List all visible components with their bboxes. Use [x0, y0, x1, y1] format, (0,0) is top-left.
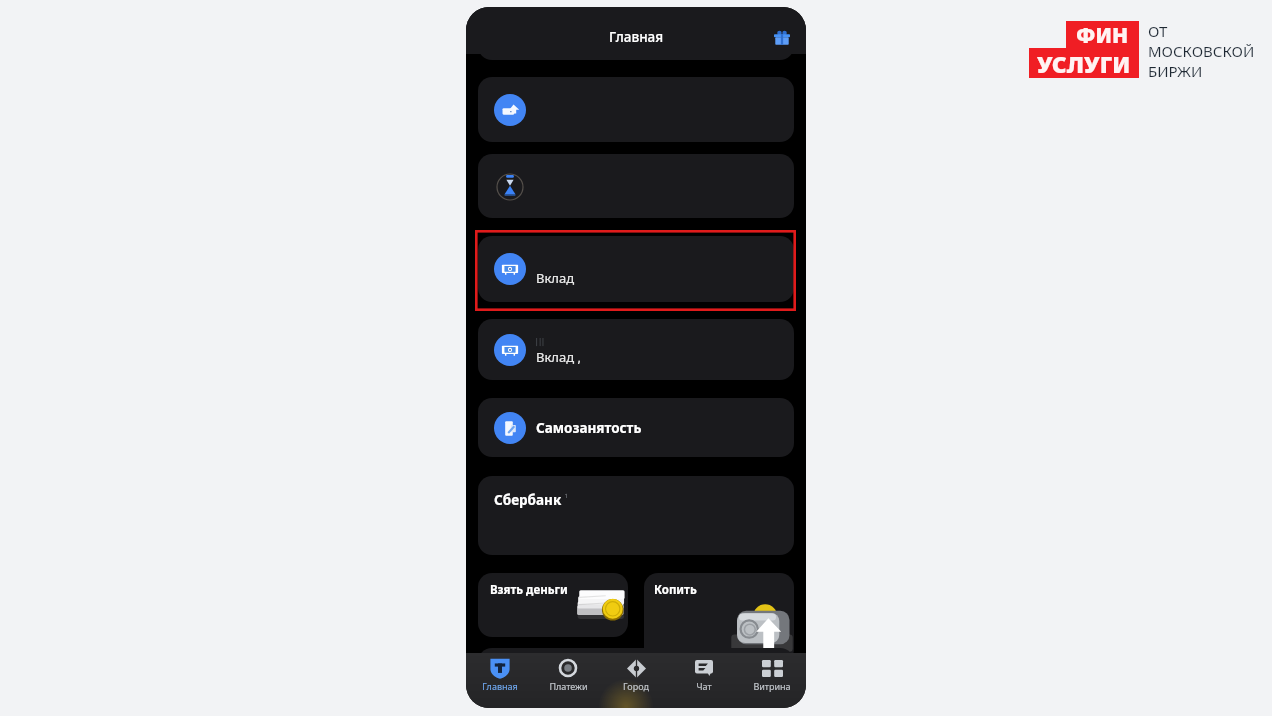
- staticText: Вклад: [536, 269, 578, 287]
- staticText: ФИН: [1076, 21, 1129, 48]
- button[interactable]: Вклад ,: [478, 319, 794, 380]
- button[interactable]: Взять деньги: [478, 573, 628, 637]
- staticText: БИРЖИ: [1148, 61, 1203, 81]
- button[interactable]: Чат: [670, 653, 738, 708]
- staticText: Взять деньги: [490, 582, 568, 598]
- staticText: Витрина: [753, 680, 791, 692]
- staticText: Вклад ,: [536, 348, 581, 366]
- staticText: Главная: [482, 680, 518, 692]
- button[interactable]: Сбербанк: [478, 476, 794, 555]
- button[interactable]: Главная: [466, 653, 534, 708]
- staticText: Копить: [654, 582, 697, 598]
- button[interactable]: [478, 648, 794, 678]
- staticText: Главная: [609, 28, 664, 46]
- button[interactable]: Самозанятость: [478, 398, 794, 457]
- button[interactable]: Вклад: [478, 236, 794, 302]
- button[interactable]: [478, 27, 794, 60]
- button[interactable]: [478, 154, 794, 218]
- staticText: Сбербанк: [494, 491, 562, 509]
- button[interactable]: Копить: [644, 573, 794, 663]
- staticText: Платежи: [549, 680, 588, 692]
- staticText: ¹: [562, 491, 569, 505]
- staticText: Чат: [696, 680, 712, 692]
- staticText: МОСКОВСКОЙ: [1148, 41, 1255, 61]
- button[interactable]: Город: [602, 653, 670, 708]
- button[interactable]: Платежи: [534, 653, 602, 708]
- button[interactable]: Витрина: [738, 653, 806, 708]
- staticText: ОТ: [1148, 21, 1168, 41]
- staticText: Самозанятость: [536, 419, 642, 437]
- button[interactable]: Gifts and bonuses: [771, 27, 793, 49]
- button[interactable]: [478, 77, 794, 142]
- staticText: УСЛУГИ: [1037, 48, 1131, 78]
- staticText: Город: [623, 680, 649, 692]
